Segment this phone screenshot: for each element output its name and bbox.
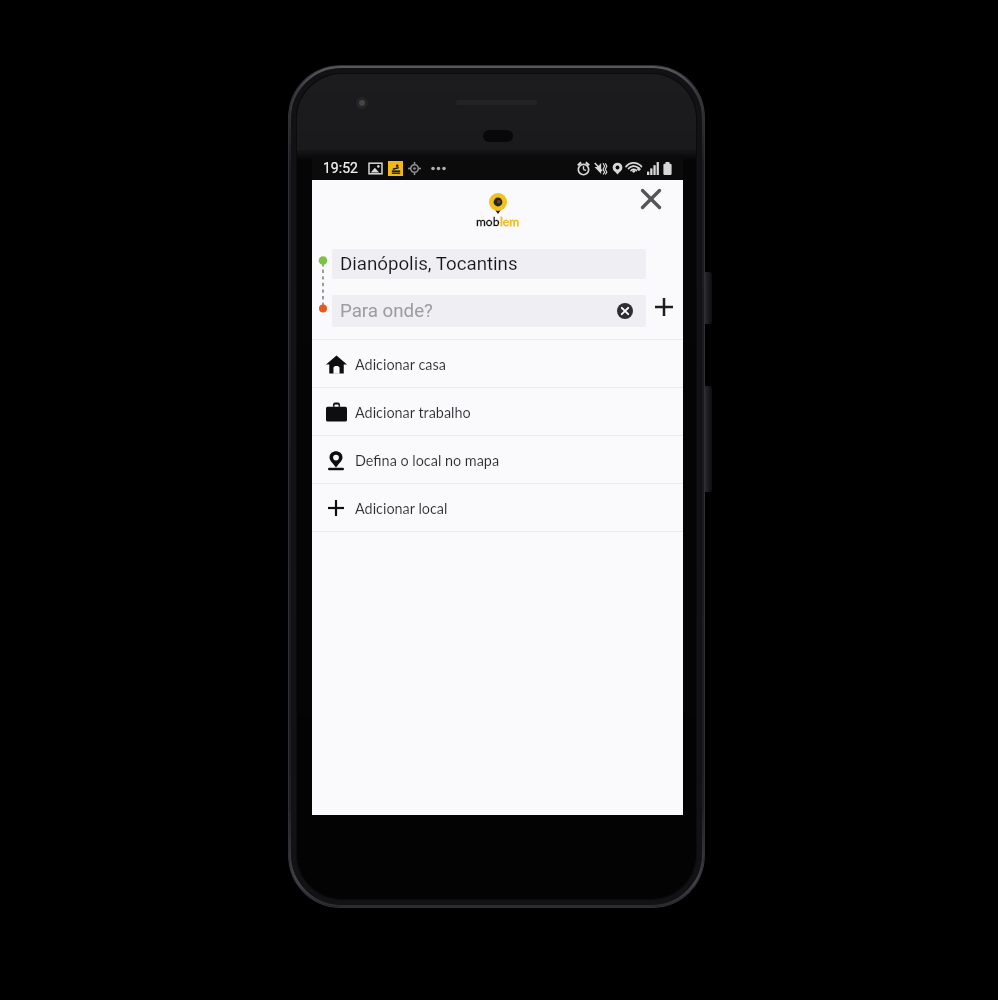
staticText: Dianópolis, Tocantins — [340, 253, 518, 275]
button[interactable]: Dianópolis, Tocantins — [332, 249, 646, 279]
staticText: Para onde? — [340, 300, 433, 322]
button[interactable]: Defina o local no mapa — [312, 436, 683, 483]
staticText: lem — [500, 214, 520, 228]
staticText: 19:52 — [323, 160, 358, 176]
staticText: Adicionar trabalho — [355, 404, 471, 421]
staticText: Adicionar casa — [355, 356, 446, 373]
staticText: Adicionar local — [355, 500, 448, 517]
button[interactable]: Clear destination — [617, 303, 633, 319]
button[interactable]: Adicionar local — [312, 484, 683, 531]
button[interactable]: Adicionar trabalho — [312, 388, 683, 435]
button[interactable]: Adicionar casa — [312, 340, 683, 387]
button[interactable]: Close — [633, 181, 669, 217]
button[interactable]: Add stop — [648, 291, 680, 323]
staticText: mob — [476, 214, 500, 228]
button[interactable]: Para onde? — [332, 295, 646, 327]
staticText: Defina o local no mapa — [355, 452, 500, 469]
